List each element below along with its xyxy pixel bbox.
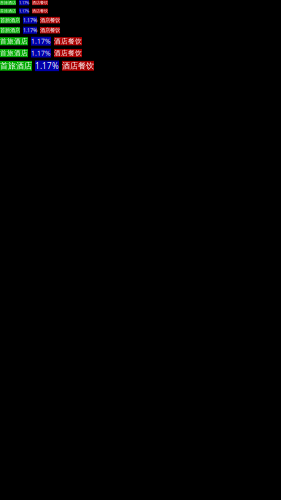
staticText: 酒店餐饮	[32, 0, 48, 5]
staticText: 首旅酒店	[0, 49, 28, 57]
staticText: 酒店餐饮	[40, 17, 60, 23]
staticText: 首旅酒店	[0, 0, 16, 5]
staticText: 首旅酒店	[0, 8, 16, 13]
staticText: 1.17%	[19, 8, 29, 14]
staticText: 1.17%	[19, 0, 29, 5]
staticText: 酒店餐饮	[40, 27, 60, 34]
staticText: 酒店餐饮	[54, 49, 82, 57]
staticText: 1.17%	[23, 17, 37, 24]
staticText: 1.17%	[35, 60, 59, 71]
staticText: 首旅酒店	[0, 27, 20, 34]
staticText: 首旅酒店	[0, 37, 28, 45]
staticText: 酒店餐饮	[62, 61, 94, 71]
staticText: 酒店餐饮	[54, 37, 82, 45]
staticText: 1.17%	[31, 49, 51, 57]
staticText: 首旅酒店	[0, 17, 20, 23]
staticText: 首旅酒店	[0, 61, 32, 71]
staticText: 酒店餐饮	[32, 8, 48, 13]
staticText: 1.17%	[31, 37, 51, 46]
staticText: 1.17%	[23, 27, 37, 34]
